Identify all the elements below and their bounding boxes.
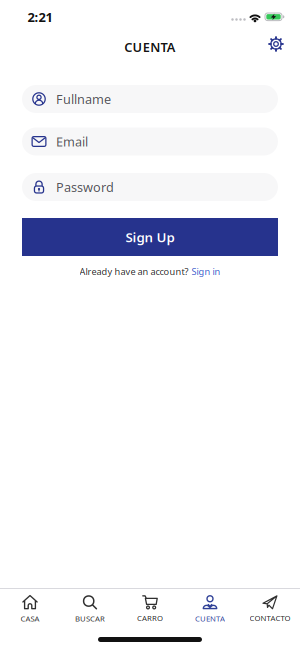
button[interactable]: CUENTA — [180, 588, 240, 630]
button[interactable]: Sign in — [191, 265, 220, 278]
staticText: Password — [56, 179, 114, 195]
staticText: CARRO — [137, 613, 163, 623]
button[interactable]: Sign Up — [22, 218, 278, 256]
staticText: CONTACTO — [249, 613, 290, 623]
button[interactable]: CONTACTO — [240, 588, 300, 630]
staticText: CASA — [20, 613, 39, 624]
button[interactable]: Fullname — [22, 85, 278, 113]
button[interactable]: CASA — [0, 588, 60, 630]
staticText: CUENTA — [124, 38, 176, 55]
button[interactable]: CARRO — [120, 588, 180, 630]
staticText: CUENTA — [195, 613, 225, 624]
staticText: Fullname — [56, 91, 111, 107]
staticText: BUSCAR — [75, 613, 105, 624]
button[interactable]: BUSCAR — [60, 588, 120, 630]
staticText: Already have an account? — [79, 265, 188, 278]
staticText: Sign in — [191, 265, 220, 278]
staticText: Sign Up — [125, 228, 174, 246]
staticText: Email — [56, 133, 88, 150]
staticText: 2:21 — [27, 8, 52, 26]
button[interactable]: Password — [22, 173, 278, 201]
button[interactable]: Email — [22, 127, 278, 155]
button[interactable] — [264, 32, 288, 56]
